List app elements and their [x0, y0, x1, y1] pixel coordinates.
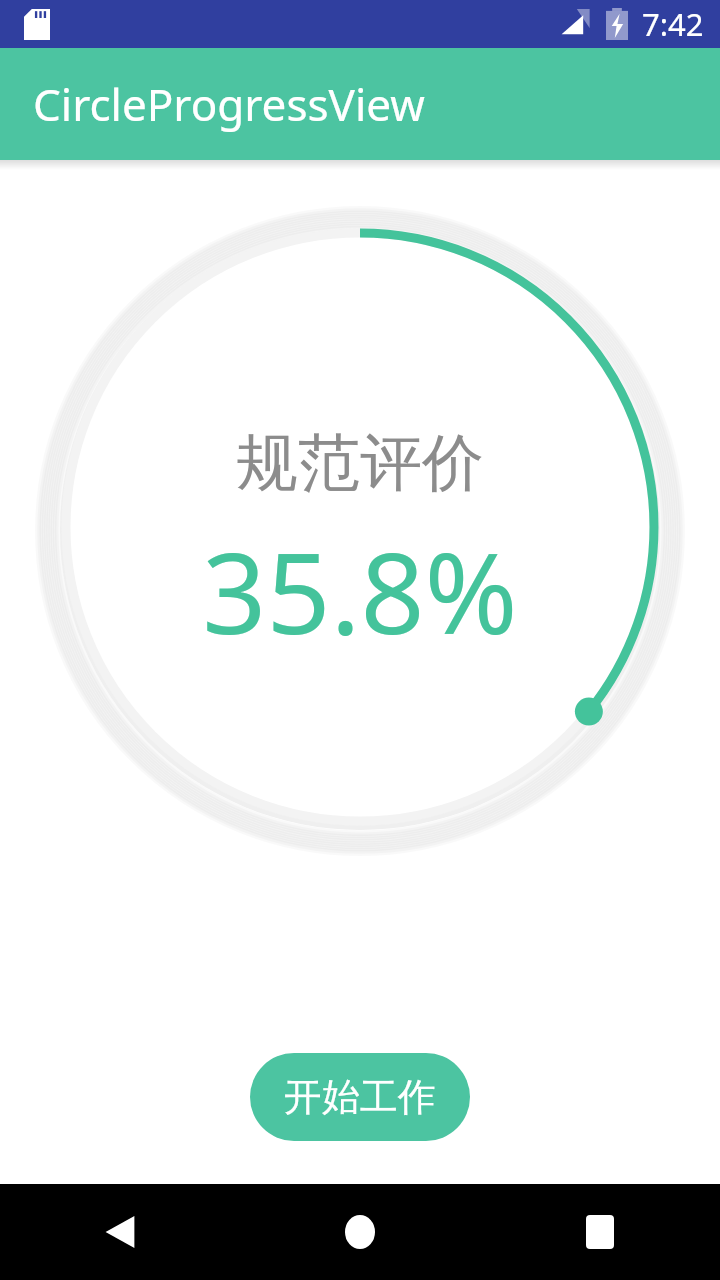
button[interactable]: Home	[240, 1184, 480, 1280]
button[interactable]: 开始工作	[250, 1053, 470, 1141]
button[interactable]: Back	[0, 1184, 240, 1280]
staticText: 7:42	[642, 3, 704, 45]
button[interactable]: Recent apps	[480, 1184, 720, 1280]
staticText: CircleProgressView	[33, 74, 425, 134]
staticText: 35.8%	[202, 514, 518, 667]
staticText: 规范评价	[236, 424, 484, 502]
staticText: 开始工作	[284, 1073, 436, 1121]
